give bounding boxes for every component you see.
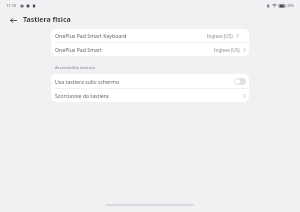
staticText: Inglese (US) xyxy=(207,33,233,39)
staticText: Scorciatoie da tastiera xyxy=(55,92,109,99)
button[interactable]: OnePlus Pad Smart Keyboard(Pogo Pin) xyxy=(51,43,249,56)
staticText: OnePlus Pad Smart Keyboard xyxy=(55,32,127,39)
button[interactable]: Usa tastiera sullo schermo xyxy=(51,74,249,88)
button[interactable]: Scorciatoie da tastiera xyxy=(51,89,249,102)
button[interactable]: Indietro xyxy=(7,14,19,26)
button[interactable]: Usa tastiera sullo schermo xyxy=(234,78,246,85)
staticText: Inglese (US) xyxy=(214,47,240,53)
staticText: OnePlus Pad Smart Keyboard(Pogo Pin) xyxy=(55,46,134,53)
button[interactable]: OnePlus Pad Smart Keyboard xyxy=(51,29,249,42)
staticText: Tastiera fisica xyxy=(23,15,71,25)
staticText: Accessibilità tastiera xyxy=(55,65,95,71)
staticText: Usa tastiera sullo schermo xyxy=(55,78,120,85)
staticText: 11:15 xyxy=(6,3,17,8)
staticText: 39% xyxy=(287,3,294,8)
